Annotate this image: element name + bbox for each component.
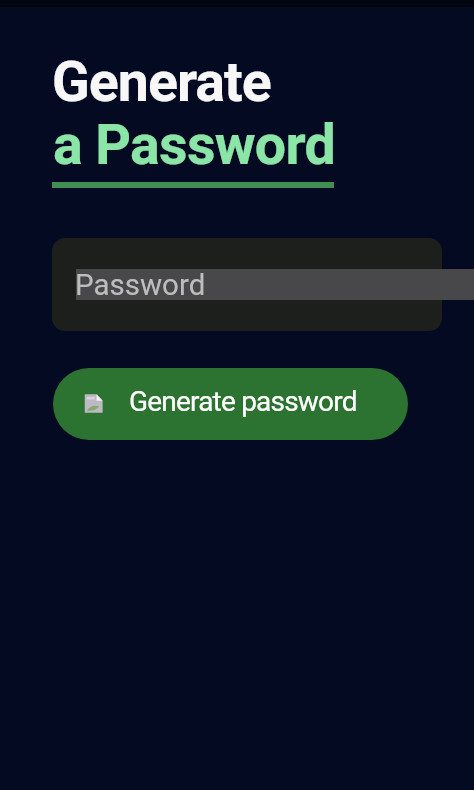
staticText: Generate password — [129, 385, 357, 418]
button[interactable] — [52, 238, 442, 331]
staticText: a Password — [53, 113, 336, 178]
button[interactable]: Generate password — [53, 368, 408, 440]
staticText: Password — [75, 268, 206, 303]
staticText: Generate — [52, 50, 271, 115]
